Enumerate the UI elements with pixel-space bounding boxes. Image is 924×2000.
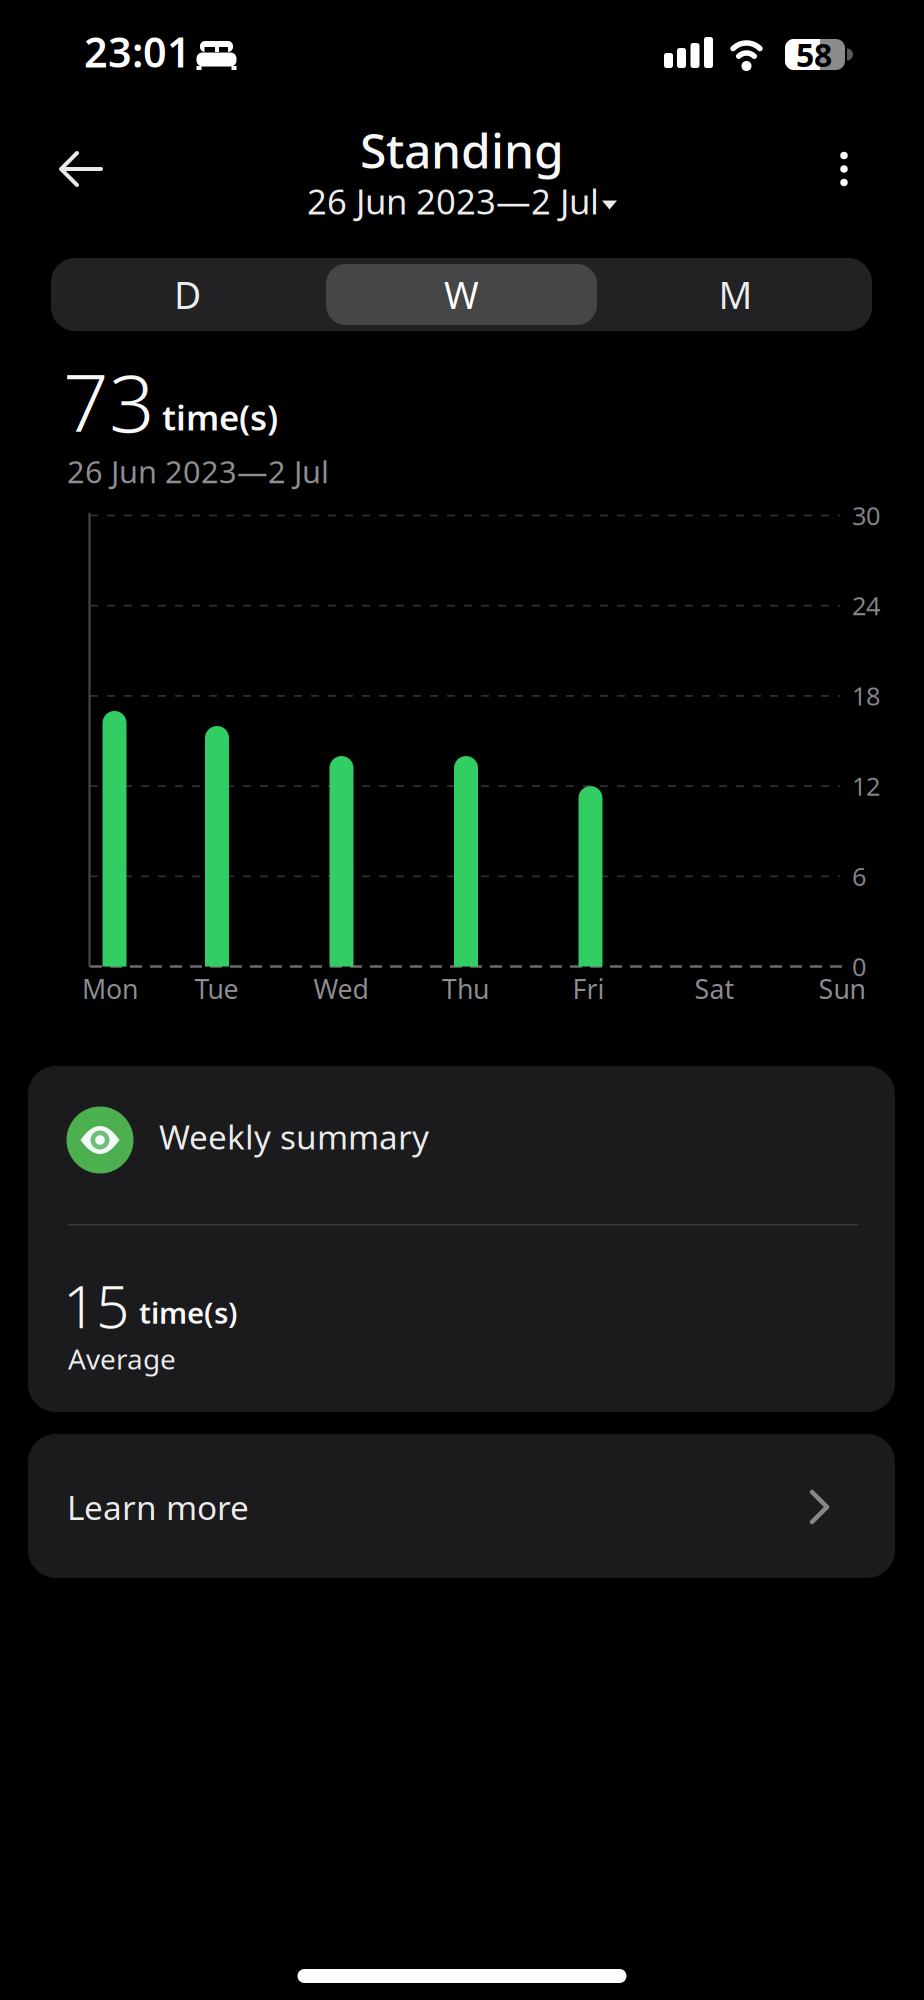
staticText: Sun <box>818 971 865 1006</box>
staticText: 18 <box>852 679 880 712</box>
staticText: Standing <box>360 118 564 182</box>
staticText: 24 <box>852 589 880 622</box>
staticText: Tue <box>194 971 238 1006</box>
staticText: 0 <box>852 949 866 983</box>
staticText: 58 <box>796 33 832 76</box>
staticText: 15 <box>63 1266 129 1344</box>
staticText: 73 <box>63 348 155 454</box>
button[interactable]: D <box>51 258 324 331</box>
button[interactable]: Learn more <box>28 1434 895 1578</box>
button[interactable]: W <box>325 258 598 331</box>
staticText: 23:01 <box>84 24 191 79</box>
staticText: Learn more <box>67 1485 249 1529</box>
staticText: time(s) <box>139 1293 238 1332</box>
staticText: 30 <box>852 498 880 532</box>
staticText: Thu <box>442 971 489 1006</box>
staticText: Mon <box>82 971 138 1006</box>
staticText: W <box>444 270 479 319</box>
staticText: Weekly summary <box>159 1114 429 1159</box>
staticText: Sat <box>694 971 734 1006</box>
staticText: 6 <box>852 859 866 893</box>
staticText: Fri <box>572 971 604 1006</box>
staticText: time(s) <box>162 394 278 440</box>
button[interactable]: Back <box>58 152 104 188</box>
staticText: Average <box>68 1340 176 1377</box>
staticText: M <box>718 270 752 319</box>
button[interactable]: More options <box>824 147 864 191</box>
staticText: 26 Jun 2023—2 Jul <box>307 178 599 224</box>
staticText: Wed <box>313 971 368 1006</box>
button[interactable]: 26 Jun 2023—2 Jul <box>307 178 617 224</box>
staticText: 12 <box>852 769 880 803</box>
button[interactable]: M <box>599 258 872 331</box>
staticText: 26 Jun 2023—2 Jul <box>67 451 329 492</box>
staticText: D <box>174 270 201 319</box>
